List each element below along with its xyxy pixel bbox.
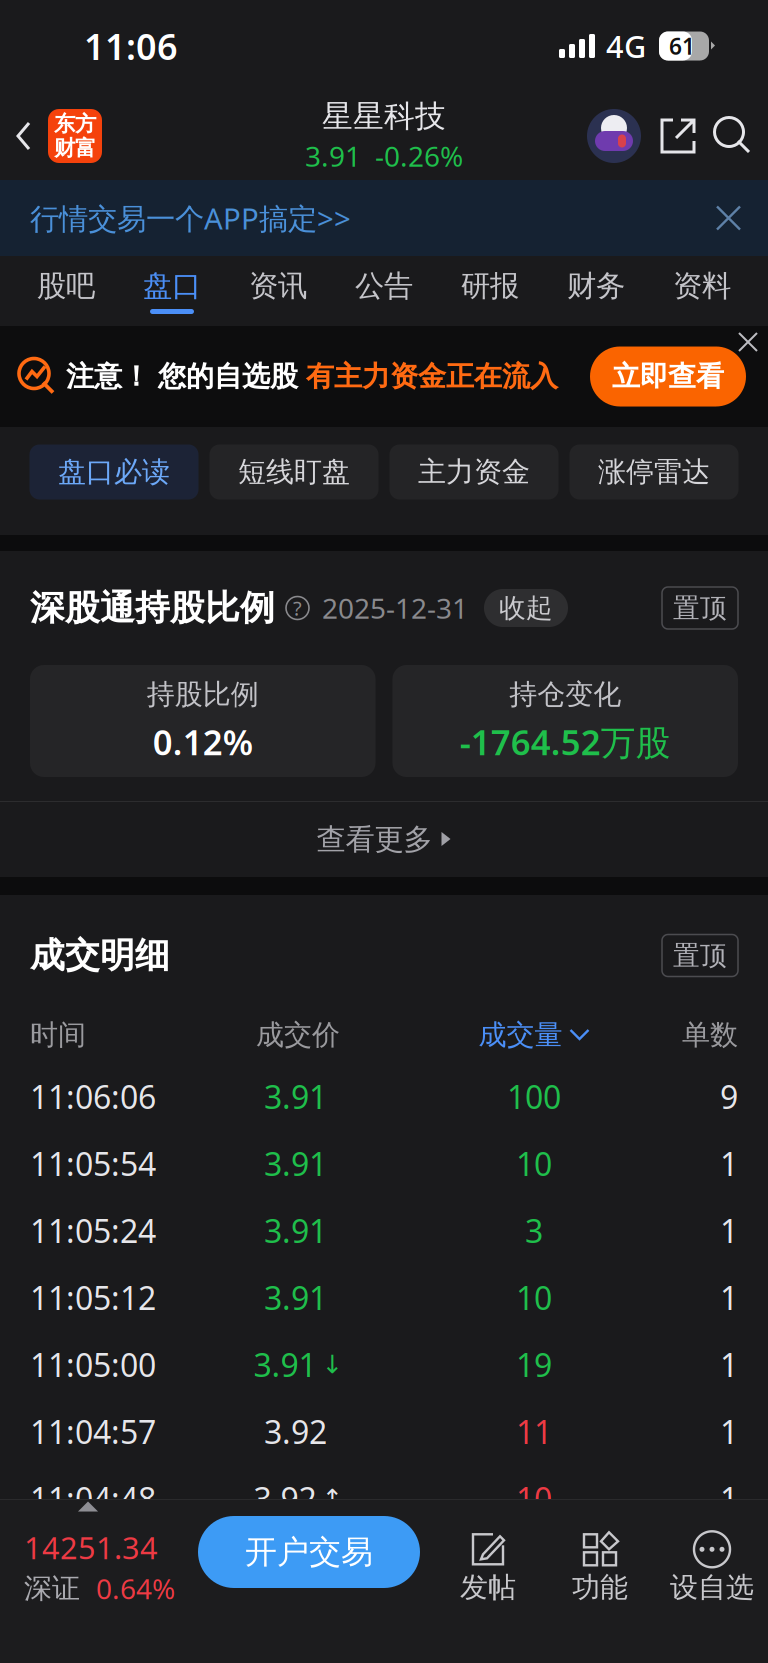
staticText: 3.92 <box>264 1410 327 1453</box>
staticText: 3 <box>525 1209 543 1252</box>
button[interactable]: 返回 <box>0 92 48 180</box>
staticText: 10 <box>516 1142 552 1185</box>
staticText: 11:06 <box>84 22 178 70</box>
staticText: 1 <box>720 1477 738 1520</box>
staticText: 1 <box>720 1276 738 1319</box>
button[interactable]: 主力资金 <box>389 444 558 499</box>
button[interactable]: 收起 <box>468 589 568 627</box>
staticText: 11:05:00 <box>30 1343 156 1386</box>
button[interactable]: 股吧 <box>13 256 119 326</box>
button[interactable]: 成交量 <box>406 1018 662 1052</box>
staticText: 主力资金 <box>418 455 530 489</box>
button[interactable]: 置顶 <box>662 934 738 976</box>
staticText: 3.91 <box>264 1075 327 1118</box>
staticText: 持仓变化 <box>509 677 621 712</box>
button[interactable]: 关闭广告 <box>737 326 768 353</box>
staticText: 10 <box>516 1477 552 1520</box>
button[interactable]: 财务 <box>543 256 649 326</box>
button[interactable]: 分享 <box>642 115 700 157</box>
button[interactable]: 智能助手 <box>586 108 642 164</box>
staticText: 查看更多 <box>316 821 432 857</box>
button[interactable]: 行情交易一个APP搞定>> <box>0 180 768 256</box>
staticText: 成交价 <box>256 1018 340 1052</box>
staticText: 盘口必读 <box>58 455 170 489</box>
staticText: 11:06:06 <box>30 1075 156 1118</box>
staticText: 行情交易一个APP搞定>> <box>30 198 351 237</box>
staticText: 3.91 -0.26% <box>305 137 463 174</box>
staticText: 3.92 <box>253 1477 316 1520</box>
button[interactable]: 涨停雷达 <box>569 444 738 499</box>
staticText: 成交明细 <box>30 934 170 977</box>
staticText: 1 <box>720 1209 738 1252</box>
staticText: 短线盯盘 <box>238 455 350 489</box>
button[interactable]: 资料 <box>649 256 755 326</box>
staticText: 东方 <box>54 111 96 137</box>
button[interactable]: 开户交易 <box>198 1516 420 1588</box>
staticText: 财务 <box>567 268 625 304</box>
staticText: 11:05:12 <box>30 1276 156 1319</box>
staticText: 11:04:48 <box>30 1477 156 1520</box>
staticText: 资料 <box>673 268 731 304</box>
button[interactable]: 设自选 <box>656 1515 768 1619</box>
staticText: 11 <box>516 1410 552 1453</box>
staticText: 置顶 <box>673 592 727 624</box>
staticText: 100 <box>507 1075 561 1118</box>
staticText: 10 <box>516 1276 552 1319</box>
button[interactable]: 置顶 <box>662 587 738 629</box>
button[interactable]: 11:05:54 <box>0 1130 768 1197</box>
staticText: 11:05:54 <box>30 1142 156 1185</box>
staticText: 1 <box>720 1142 738 1185</box>
staticText: 持股比例 <box>147 677 259 712</box>
staticText: 14251.34 <box>24 1527 158 1568</box>
staticText: 0.64% <box>96 1570 175 1607</box>
staticText: 深证 <box>24 1571 80 1606</box>
button[interactable]: 发帖 <box>432 1515 544 1619</box>
staticText: 立即查看 <box>612 359 724 394</box>
staticText: 功能 <box>572 1570 628 1605</box>
button[interactable]: 搜索 <box>700 115 768 157</box>
button[interactable]: 盘口 <box>119 256 225 326</box>
staticText: 注意！ <box>66 359 150 394</box>
button[interactable]: 功能 <box>544 1515 656 1619</box>
staticText: 股吧 <box>37 268 95 304</box>
button[interactable]: 盘口必读 <box>29 444 198 499</box>
staticText: 61 <box>669 31 695 61</box>
button[interactable]: 注意！ <box>0 326 768 427</box>
button[interactable]: 11:04:48 <box>0 1465 768 1532</box>
button[interactable]: 11:05:24 <box>0 1197 768 1264</box>
staticText: ↓ <box>321 1350 342 1379</box>
staticText: 开户交易 <box>245 1532 373 1572</box>
staticText: 收起 <box>499 592 553 624</box>
button[interactable]: 查看更多 <box>0 802 768 877</box>
button[interactable]: 东方财富 <box>48 109 102 163</box>
staticText: 11:05:24 <box>30 1209 156 1252</box>
staticText: 发帖 <box>460 1570 516 1605</box>
staticText: 时间 <box>30 1018 86 1052</box>
staticText: -1764.52万股 <box>460 719 671 765</box>
staticText: ↑ <box>321 1484 342 1513</box>
staticText: 3.91 <box>264 1276 327 1319</box>
button[interactable]: 11:05:00 <box>0 1331 768 1398</box>
button[interactable]: 11:05:12 <box>0 1264 768 1331</box>
staticText: 19 <box>516 1343 552 1386</box>
staticText: 单数 <box>682 1018 738 1052</box>
button[interactable]: 研报 <box>437 256 543 326</box>
staticText: 深股通持股比例 <box>30 587 275 629</box>
staticText: 3.91 <box>253 1343 316 1386</box>
staticText: 公告 <box>355 268 413 304</box>
staticText: 1 <box>720 1343 738 1386</box>
button[interactable]: 11:06:06 <box>0 1063 768 1130</box>
staticText: 3.91 <box>264 1142 327 1185</box>
staticText: 研报 <box>461 268 519 304</box>
staticText: 1 <box>720 1410 738 1453</box>
staticText: 财富 <box>54 135 96 161</box>
staticText: 3.91 <box>264 1209 327 1252</box>
button[interactable]: 资讯 <box>225 256 331 326</box>
button[interactable]: 公告 <box>331 256 437 326</box>
button[interactable]: 11:04:57 <box>0 1398 768 1465</box>
button[interactable]: 短线盯盘 <box>209 444 378 499</box>
staticText: 设自选 <box>670 1570 754 1605</box>
staticText: 资讯 <box>249 268 307 304</box>
staticText: 4G <box>606 26 646 66</box>
staticText: 有主力资金正在流入 <box>306 359 558 394</box>
